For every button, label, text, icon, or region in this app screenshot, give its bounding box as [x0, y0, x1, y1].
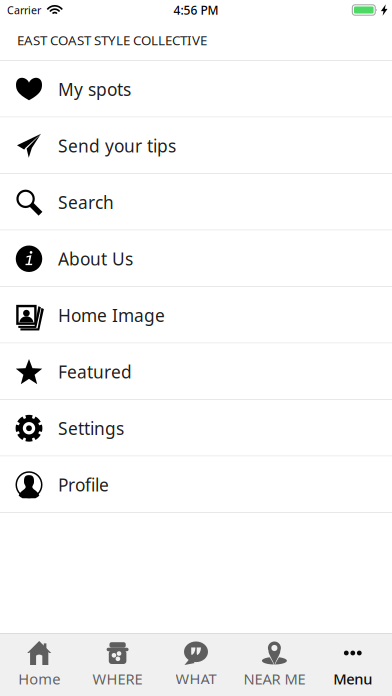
button[interactable]: WHAT	[157, 634, 235, 696]
button[interactable]: NEAR ME	[235, 634, 314, 696]
staticText: NEAR ME	[243, 669, 305, 688]
staticText: Home Image	[58, 304, 165, 327]
button[interactable]: Home	[0, 634, 78, 696]
staticText: 4:56 PM	[173, 2, 218, 18]
staticText: Send your tips	[58, 134, 176, 157]
staticText: Search	[58, 191, 114, 214]
button[interactable]: Home Image	[0, 287, 392, 343]
staticText: Profile	[58, 473, 109, 496]
staticText: My spots	[58, 78, 131, 101]
button[interactable]: My spots	[0, 61, 392, 117]
staticText: Featured	[58, 360, 132, 383]
button[interactable]: WHERE	[78, 634, 157, 696]
button[interactable]: EAST COAST STYLE COLLECTIVE	[0, 20, 392, 60]
staticText: WHAT	[175, 669, 216, 688]
button[interactable]: Featured	[0, 343, 392, 400]
staticText: Settings	[58, 417, 124, 440]
button[interactable]: Menu	[314, 634, 392, 696]
staticText: Carrier	[7, 3, 41, 17]
button[interactable]: Profile	[0, 456, 392, 513]
button[interactable]: Send your tips	[0, 117, 392, 174]
button[interactable]: About Us	[0, 230, 392, 287]
button[interactable]: Search	[0, 174, 392, 230]
staticText: Home	[18, 669, 60, 688]
staticText: WHERE	[93, 669, 143, 688]
staticText: EAST COAST STYLE COLLECTIVE	[17, 31, 207, 49]
staticText: About Us	[58, 247, 133, 270]
staticText: Menu	[333, 669, 372, 688]
button[interactable]: Settings	[0, 400, 392, 456]
